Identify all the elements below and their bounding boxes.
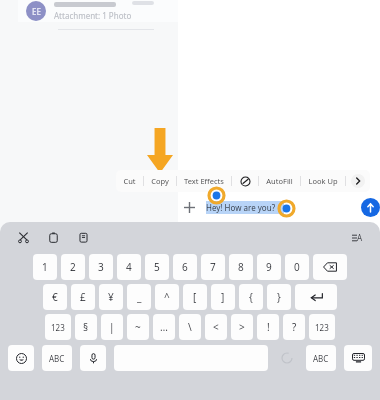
button[interactable]: > <box>231 314 253 340</box>
staticText: ABC <box>49 353 65 364</box>
button[interactable]: Copy <box>144 170 176 192</box>
button[interactable]: € <box>43 284 67 310</box>
staticText: 123 <box>51 322 65 333</box>
staticText: 7 <box>210 260 216 274</box>
button[interactable] <box>18 0 178 22</box>
staticText: 8 <box>238 260 244 274</box>
button[interactable]: 123 <box>45 314 71 340</box>
staticText: ] <box>221 290 225 304</box>
staticText: 5 <box>154 260 160 274</box>
button[interactable]: AutoFill <box>259 170 300 192</box>
button[interactable]: ? <box>283 314 305 340</box>
staticText: Cut <box>123 176 136 186</box>
staticText: 0 <box>294 260 300 274</box>
button[interactable]: £ <box>71 284 95 310</box>
button[interactable]: Translate <box>232 170 258 192</box>
button[interactable]: Hey! How are you? <box>202 198 355 217</box>
button[interactable]: § <box>75 314 97 340</box>
staticText: § <box>83 320 89 334</box>
staticText: ^ <box>164 290 170 304</box>
button[interactable]: Hide keyboard <box>344 345 372 371</box>
button[interactable]: | <box>101 314 123 340</box>
button[interactable]: Add attachment <box>178 196 200 218</box>
button[interactable]: 8 <box>229 254 253 280</box>
staticText: _ <box>137 290 142 304</box>
staticText: ¥ <box>108 290 114 304</box>
button[interactable]: More <box>346 170 370 192</box>
button[interactable]: 2 <box>61 254 85 280</box>
button[interactable]: EE <box>26 0 132 22</box>
button[interactable]: Return <box>295 284 337 310</box>
button[interactable]: { <box>239 284 263 310</box>
button[interactable]: Text formatting <box>346 226 368 248</box>
staticText: ~ <box>135 320 141 334</box>
button[interactable]: Cut <box>12 226 34 248</box>
button[interactable]: Cut <box>116 170 143 192</box>
button[interactable]: Send <box>361 198 380 217</box>
button[interactable]: ~ <box>127 314 149 340</box>
staticText: [ <box>193 290 197 304</box>
staticText: Copy <box>151 176 169 186</box>
button[interactable]: ^ <box>155 284 179 310</box>
staticText: AutoFill <box>266 176 293 186</box>
staticText: Look Up <box>308 176 338 186</box>
button[interactable]: 5 <box>145 254 169 280</box>
staticText: 4 <box>126 260 132 274</box>
staticText: } <box>277 290 281 304</box>
button[interactable]: 3 <box>89 254 113 280</box>
staticText: > <box>239 320 245 334</box>
staticText: ABC <box>313 353 329 364</box>
button[interactable]: ABC <box>306 345 336 371</box>
button[interactable]: ABC <box>42 345 72 371</box>
button[interactable]: 123 <box>309 314 335 340</box>
staticText: 9 <box>266 260 272 274</box>
staticText: EE <box>32 6 41 17</box>
staticText: { <box>249 290 253 304</box>
staticText: 6 <box>182 260 188 274</box>
staticText: < <box>213 320 219 334</box>
staticText: Hey! How are you? <box>206 202 276 213</box>
button[interactable]: _ <box>127 284 151 310</box>
staticText: 1 <box>42 260 48 274</box>
staticText: A <box>357 232 363 243</box>
staticText: ! <box>267 320 270 334</box>
staticText: \ <box>188 320 192 334</box>
button[interactable]: ¥ <box>99 284 123 310</box>
staticText: Text Effects <box>184 176 224 186</box>
button[interactable]: 7 <box>201 254 225 280</box>
staticText: … <box>160 320 168 334</box>
staticText: ? <box>292 320 297 334</box>
button[interactable]: Paste <box>72 226 94 248</box>
button[interactable]: 0 <box>285 254 309 280</box>
staticText: € <box>52 290 58 304</box>
button[interactable]: Emoji <box>8 345 34 371</box>
button[interactable]: 1 <box>33 254 57 280</box>
button[interactable]: ] <box>211 284 235 310</box>
button[interactable]: … <box>153 314 175 340</box>
button[interactable]: } <box>267 284 291 310</box>
staticText: | <box>109 320 115 334</box>
staticText: £ <box>80 290 86 304</box>
button[interactable]: Text Effects <box>177 170 231 192</box>
button[interactable]: 9 <box>257 254 281 280</box>
button[interactable]: Return <box>274 345 300 371</box>
button[interactable]: Copy <box>42 226 64 248</box>
button[interactable]: 6 <box>173 254 197 280</box>
button[interactable]: 4 <box>117 254 141 280</box>
button[interactable]: ! <box>257 314 279 340</box>
button[interactable]: Voice input <box>80 345 106 371</box>
staticText: Attachment: 1 Photo <box>54 10 132 21</box>
staticText: 2 <box>70 260 76 274</box>
button[interactable]: \ <box>179 314 201 340</box>
button[interactable]: < <box>205 314 227 340</box>
staticText: 3 <box>98 260 104 274</box>
staticText: 123 <box>315 322 329 333</box>
button[interactable]: Backspace <box>313 254 347 280</box>
button[interactable]: [ <box>183 284 207 310</box>
button[interactable]: Look Up <box>301 170 345 192</box>
